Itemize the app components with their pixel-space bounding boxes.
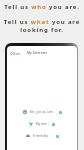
button[interactable]: Me, just as I am — [7, 106, 77, 118]
staticText: Tell us what you are looking for. — [3, 18, 81, 33]
button[interactable]: Friendship — [7, 130, 77, 142]
staticText: Back — [13, 51, 21, 55]
staticText: My love — [36, 122, 48, 126]
button[interactable]: My love — [7, 118, 77, 130]
staticText: My Interests — [27, 50, 48, 55]
staticText: Me, just as I am — [30, 110, 53, 114]
button[interactable]: Back — [9, 51, 22, 55]
staticText: Tell us who you are. — [0, 3, 84, 11]
staticText: Friendship — [33, 134, 49, 138]
